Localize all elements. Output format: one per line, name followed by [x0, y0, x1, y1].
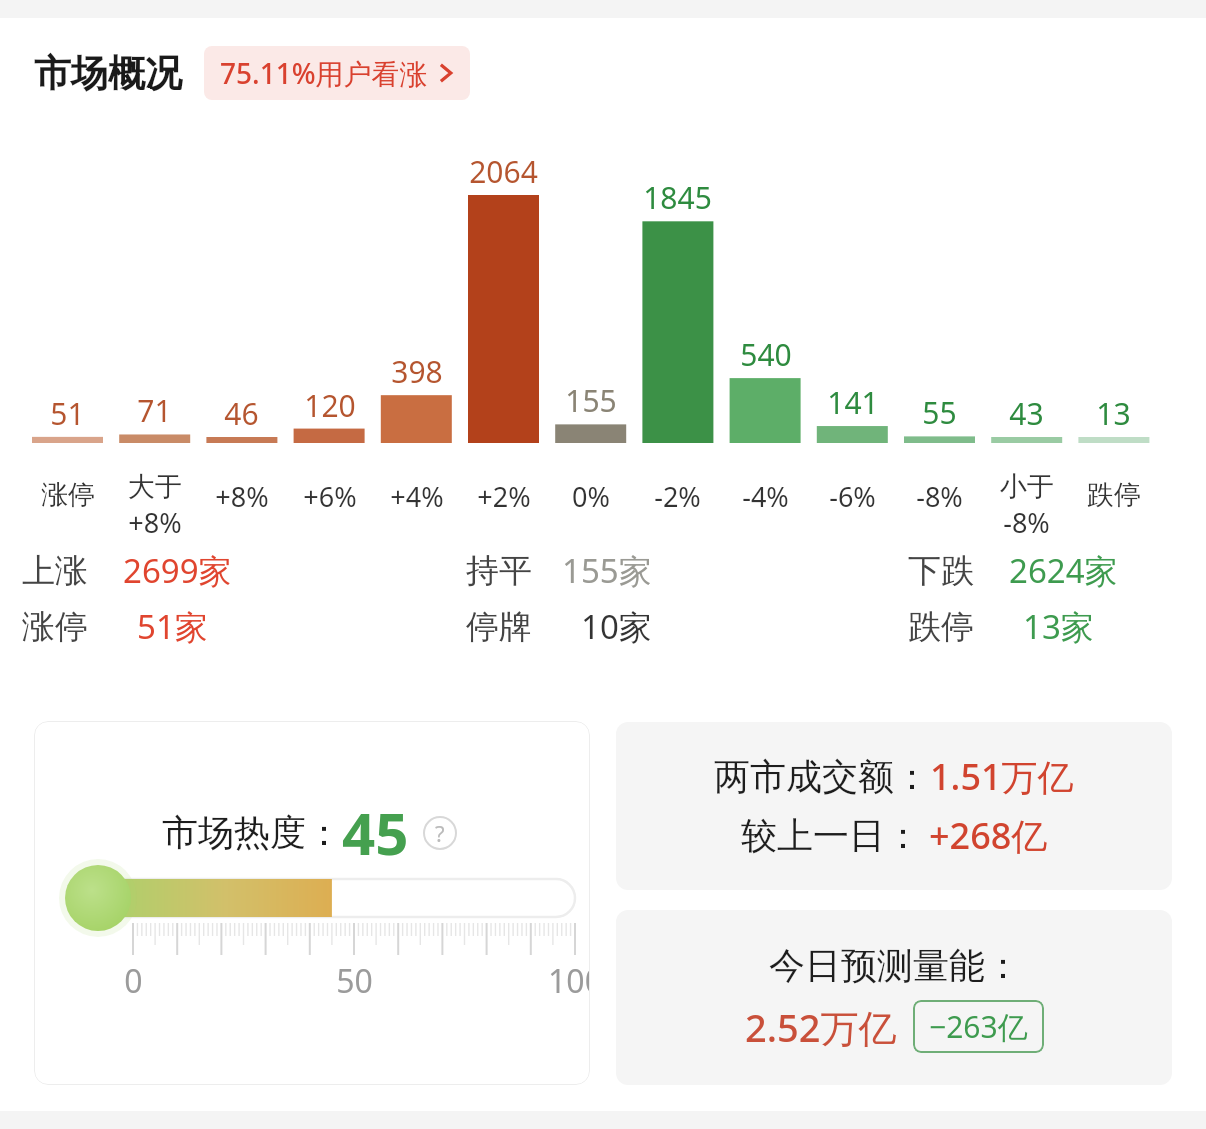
staticText: 540	[740, 334, 792, 375]
staticText: 市场概况	[34, 50, 182, 97]
staticText: 45	[342, 793, 409, 872]
staticText: 0	[124, 959, 143, 1003]
staticText: 50	[336, 959, 373, 1003]
staticText: 跌停	[908, 606, 974, 648]
staticText: 13	[1096, 393, 1131, 434]
staticText: +8%	[128, 504, 182, 541]
button[interactable]: 下跌	[908, 548, 1118, 593]
staticText: -6%	[829, 478, 876, 515]
staticText: -4%	[742, 478, 789, 515]
staticText: ?	[435, 818, 445, 848]
staticText: 今日预测量能：	[769, 943, 1021, 988]
staticText: 51	[50, 393, 85, 434]
staticText: +2%	[477, 478, 531, 515]
staticText: +4%	[390, 478, 444, 515]
staticText: −263亿	[929, 1006, 1028, 1047]
staticText: 2.52万亿	[745, 1001, 897, 1053]
staticText: 两市成交额：	[714, 754, 930, 799]
staticText: 2699家	[123, 548, 232, 593]
staticText: 13家	[1023, 604, 1094, 649]
staticText: 100	[548, 959, 590, 1003]
staticText: 43	[1009, 393, 1044, 434]
button[interactable]: 持平	[466, 548, 652, 593]
staticText: +6%	[303, 478, 357, 515]
staticText: 155家	[562, 548, 652, 593]
staticText: 55	[922, 392, 957, 433]
staticText: 涨停	[41, 478, 95, 512]
button[interactable]: 75.11%用户看涨	[204, 46, 470, 100]
staticText: 1845	[643, 177, 712, 218]
staticText: +268亿	[929, 811, 1048, 860]
staticText: 46	[224, 393, 259, 434]
staticText: 10家	[581, 604, 652, 649]
staticText: 较上一日：	[741, 813, 921, 858]
staticText: 涨停	[22, 606, 88, 648]
button[interactable]: 市场热度：	[34, 721, 590, 1085]
staticText: +8%	[215, 478, 269, 515]
staticText: 2624家	[1009, 548, 1118, 593]
staticText: 0%	[572, 478, 610, 515]
staticText: 120	[304, 385, 356, 426]
staticText: -2%	[654, 478, 701, 515]
button[interactable]: 两市成交额：	[616, 722, 1172, 890]
button[interactable]: 停牌	[466, 604, 652, 649]
staticText: 上涨	[22, 550, 88, 592]
staticText: -8%	[916, 478, 963, 515]
staticText: 1.51万亿	[930, 752, 1074, 801]
staticText: 停牌	[466, 606, 532, 648]
staticText: 51家	[137, 604, 208, 649]
staticText: -8%	[1003, 504, 1050, 541]
staticText: 155	[565, 380, 617, 421]
staticText: 398	[391, 351, 443, 392]
staticText: 2064	[469, 151, 538, 192]
staticText: 市场热度：	[162, 810, 342, 855]
button[interactable]: 跌停	[908, 604, 1094, 649]
staticText: 75.11%用户看涨	[220, 54, 428, 92]
staticText: 大于	[128, 470, 182, 504]
staticText: 141	[827, 382, 879, 423]
button[interactable]: −263亿	[913, 1000, 1044, 1053]
button[interactable]: 今日预测量能：	[616, 910, 1172, 1085]
staticText: 下跌	[908, 550, 974, 592]
button[interactable]: 涨停	[22, 604, 208, 649]
button[interactable]: 帮助说明	[423, 816, 457, 850]
staticText: 小于	[1000, 470, 1054, 504]
staticText: 跌停	[1087, 478, 1141, 512]
staticText: 71	[137, 390, 172, 431]
button[interactable]: 上涨	[22, 548, 232, 593]
staticText: 持平	[466, 550, 532, 592]
